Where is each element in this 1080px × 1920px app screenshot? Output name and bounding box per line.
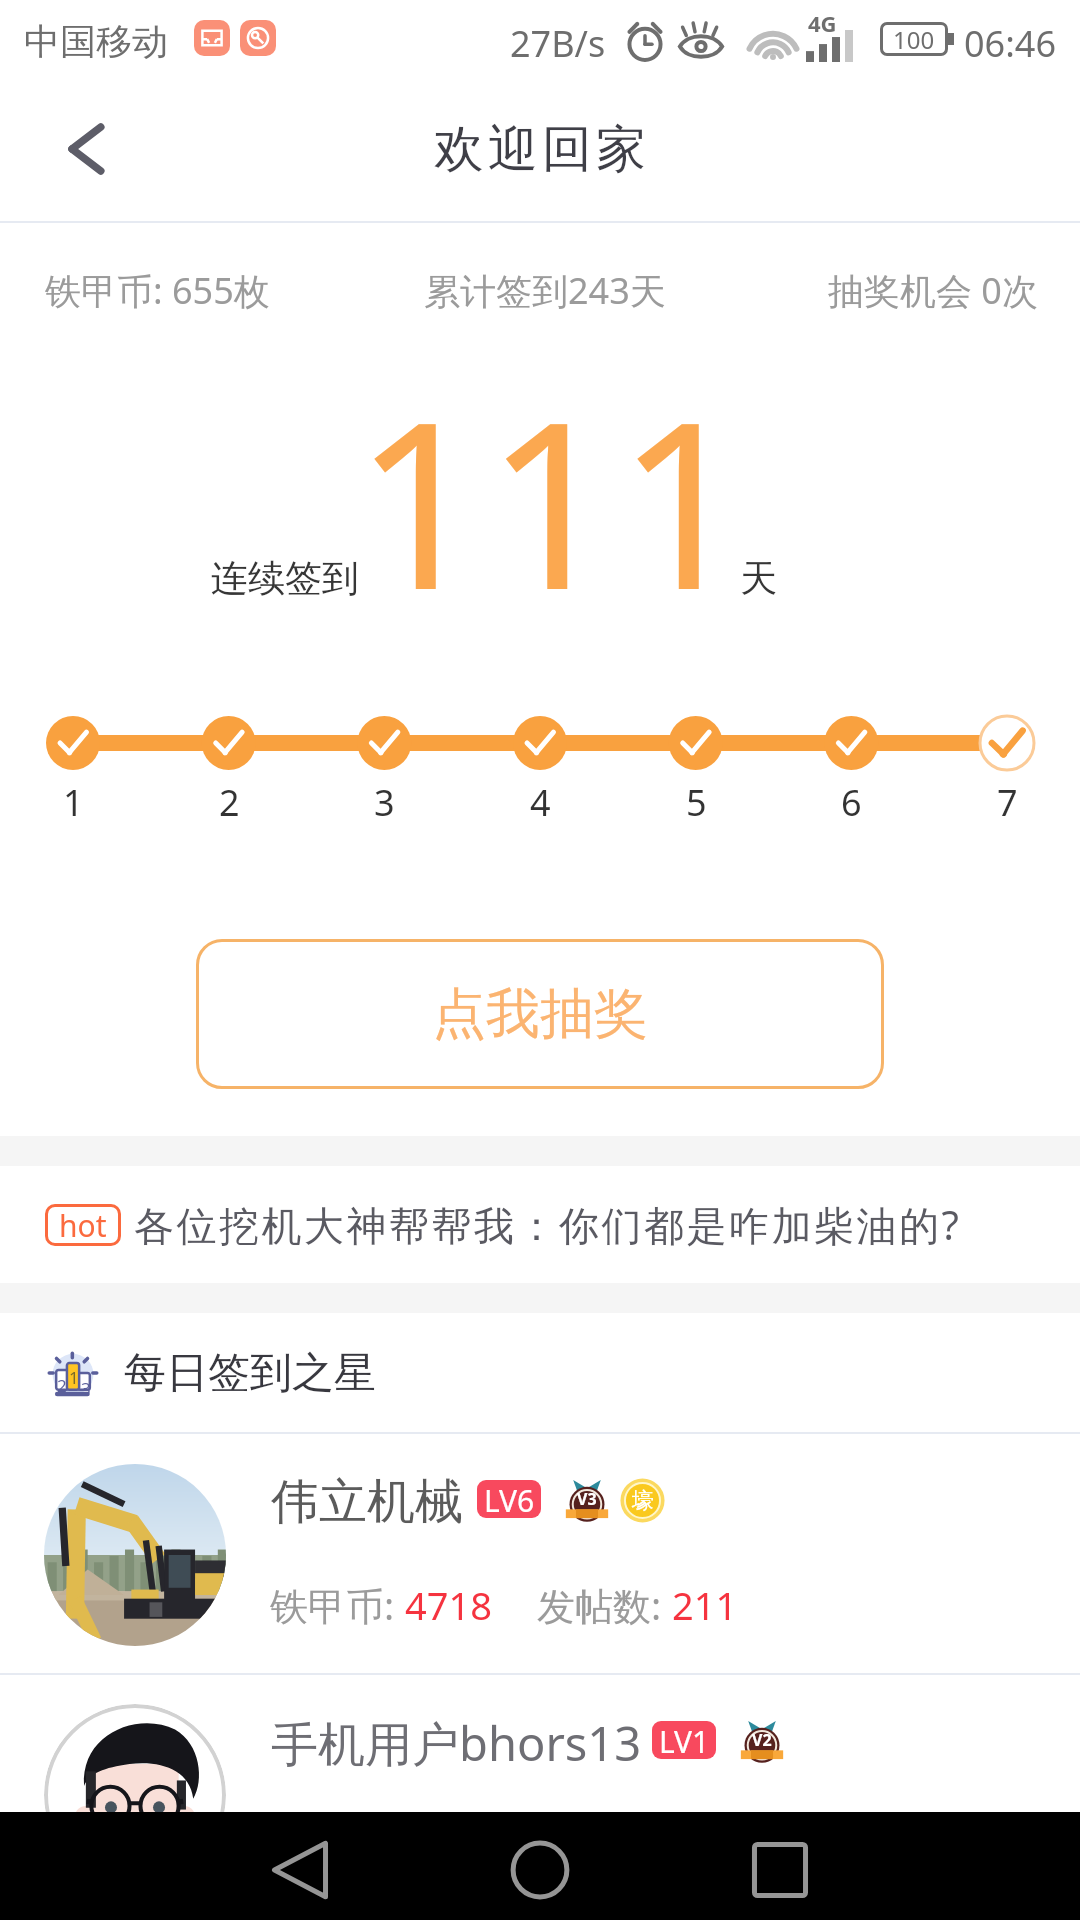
- button[interactable]: Back: [30, 94, 140, 204]
- staticText: 1: [63, 778, 84, 827]
- button[interactable]: Recent apps: [733, 1823, 827, 1917]
- staticText: 100: [893, 23, 935, 56]
- staticText: 铁甲币:: [270, 1579, 405, 1631]
- staticText: 抽奖机会 0次: [828, 266, 1038, 315]
- button[interactable]: 2: [0, 1313, 1080, 1433]
- staticText: LV1: [659, 1721, 710, 1759]
- staticText: 6: [841, 778, 862, 827]
- staticText: V3: [577, 1488, 597, 1510]
- staticText: 手机用户bhors13: [271, 1711, 642, 1775]
- staticText: 1: [69, 1366, 79, 1389]
- staticText: 3: [374, 778, 395, 827]
- staticText: 211: [672, 1579, 738, 1631]
- button[interactable]: hot: [0, 1166, 1080, 1283]
- staticText: LV6: [484, 1480, 535, 1518]
- button[interactable]: 手机用户bhors13: [0, 1675, 1080, 1812]
- staticText: 天: [740, 555, 777, 602]
- staticText: 4: [530, 778, 551, 827]
- staticText: V2: [752, 1729, 772, 1751]
- staticText: 每日签到之星: [124, 1347, 376, 1400]
- staticText: 4G: [808, 8, 837, 38]
- staticText: 06:46: [964, 19, 1057, 68]
- staticText: 点我抽奖: [432, 980, 648, 1048]
- staticText: 111: [354, 343, 749, 656]
- staticText: 累计签到243天: [424, 266, 666, 315]
- staticText: 27B/s: [510, 19, 606, 68]
- staticText: 2: [57, 1374, 67, 1397]
- staticText: 7: [997, 778, 1018, 827]
- staticText: 中国移动: [24, 19, 168, 64]
- staticText: 壕: [632, 1487, 654, 1515]
- button[interactable]: 点我抽奖: [196, 939, 884, 1089]
- button[interactable]: Back: [253, 1823, 347, 1917]
- staticText: 连续签到: [211, 555, 359, 602]
- staticText: 3: [81, 1377, 91, 1400]
- staticText: 发帖数:: [537, 1579, 672, 1631]
- staticText: 铁甲币: 655枚: [45, 266, 270, 315]
- staticText: 5: [686, 778, 707, 827]
- staticText: 2: [219, 778, 240, 827]
- button[interactable]: Home: [493, 1823, 587, 1917]
- staticText: 各位挖机大神帮帮我：你们都是咋加柴油的?: [134, 1197, 962, 1252]
- staticText: 伟立机械: [271, 1472, 463, 1532]
- staticText: 欢迎回家: [432, 118, 648, 181]
- button[interactable]: 伟立机械: [0, 1434, 1080, 1673]
- staticText: hot: [59, 1205, 107, 1246]
- staticText: 4718: [405, 1579, 492, 1631]
